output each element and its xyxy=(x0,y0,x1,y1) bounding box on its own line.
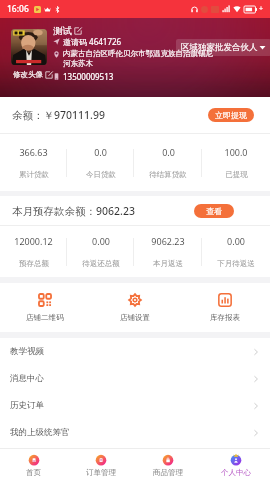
staticText: 教学视频 xyxy=(10,346,44,357)
button[interactable]: 区域独家批发合伙人 xyxy=(176,39,270,56)
staticText: 店铺设置 xyxy=(120,313,150,322)
button[interactable]: 消息中心 xyxy=(0,365,270,392)
button[interactable]: 我的上级统筹官 xyxy=(0,419,270,446)
staticText: 待返还总额 xyxy=(82,259,120,268)
staticText: 0.00 xyxy=(227,235,245,247)
button[interactable]: 修改头像 xyxy=(13,70,53,79)
staticText: 首页 xyxy=(26,468,41,477)
staticText: 本月预存款余额：9062.23 xyxy=(12,204,135,218)
staticText: 100.0 xyxy=(224,146,248,158)
staticText: 0.0 xyxy=(162,146,175,158)
button[interactable]: 店铺二维码 xyxy=(0,283,90,332)
staticText: + xyxy=(259,4,264,14)
staticText: 待结算贷款 xyxy=(149,170,187,179)
button[interactable]: 查看 xyxy=(194,204,234,218)
staticText: 内蒙古自治区呼伦贝尔市鄂温克族自治旗锡尼河东苏木 xyxy=(63,49,220,69)
staticText: 商品管理 xyxy=(153,468,183,477)
button[interactable]: 首页 xyxy=(0,449,67,480)
staticText: 订单管理 xyxy=(86,468,116,477)
staticText: 已提现 xyxy=(225,170,248,179)
staticText: 我的上级统筹官 xyxy=(10,427,70,438)
button[interactable]: 订单管理 xyxy=(67,449,134,480)
staticText: 本月返送 xyxy=(153,259,183,268)
button[interactable]: 个人中心 xyxy=(202,449,270,480)
button[interactable]: 编辑昵称 xyxy=(74,27,82,35)
staticText: 历史订单 xyxy=(10,400,44,411)
staticText: 店铺二维码 xyxy=(26,313,64,322)
staticText: 库存报表 xyxy=(210,313,240,322)
staticText: 查看 xyxy=(206,206,222,216)
button[interactable]: 教学视频 xyxy=(0,338,270,365)
button[interactable]: 头像 xyxy=(11,29,47,65)
staticText: 366.63 xyxy=(19,146,48,158)
staticText: 立即提现 xyxy=(215,110,247,120)
staticText: 消息中心 xyxy=(10,373,44,384)
staticText: 测试 xyxy=(53,25,72,37)
button[interactable]: 立即提现 xyxy=(208,108,254,122)
staticText: 12000.12 xyxy=(14,235,53,247)
staticText: 16:06 xyxy=(7,3,29,15)
staticText: 余额：￥970111.99 xyxy=(12,108,105,122)
button[interactable]: 历史订单 xyxy=(0,392,270,419)
staticText: 预存总额 xyxy=(19,259,49,268)
staticText: 0.0 xyxy=(94,146,107,158)
staticText: 累计贷款 xyxy=(19,170,49,179)
staticText: 修改头像 xyxy=(13,70,43,79)
staticText: 9062.23 xyxy=(151,235,185,247)
button[interactable]: 库存报表 xyxy=(180,283,270,332)
button[interactable]: 店铺设置 xyxy=(90,283,180,332)
button[interactable]: 商品管理 xyxy=(134,449,202,480)
staticText: 个人中心 xyxy=(221,468,251,477)
staticText: 今日贷款 xyxy=(86,170,116,179)
staticText: 邀请码 4641726 xyxy=(63,36,122,47)
staticText: 下月待返送 xyxy=(217,259,255,268)
staticText: 区域独家批发合伙人 xyxy=(181,42,258,53)
staticText: 13500009513 xyxy=(63,71,114,82)
staticText: 0.00 xyxy=(92,235,110,247)
